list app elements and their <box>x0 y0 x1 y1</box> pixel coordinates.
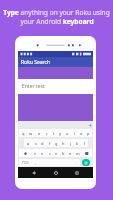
staticText: n <box>69 151 72 156</box>
button[interactable]: s <box>32 139 39 147</box>
button[interactable]: , <box>32 159 39 166</box>
button[interactable]: g <box>53 139 60 147</box>
button[interactable]: e <box>35 129 43 137</box>
button[interactable]: u <box>64 129 71 137</box>
button[interactable]: j <box>67 139 74 147</box>
staticText: j <box>70 141 72 146</box>
button[interactable]: a <box>24 139 32 147</box>
button[interactable]: Home <box>51 168 61 178</box>
button[interactable]: Recents <box>72 168 82 178</box>
button[interactable]: Back <box>29 168 39 178</box>
button[interactable]: w <box>27 129 35 137</box>
staticText: , <box>35 160 37 165</box>
staticText: k <box>76 141 79 146</box>
staticText: e <box>38 131 41 136</box>
button[interactable]: y <box>57 129 64 137</box>
staticText: Type anything on your Roku using <box>3 8 110 17</box>
button[interactable]: More options <box>87 122 93 128</box>
staticText: q <box>22 131 25 136</box>
button[interactable]: l <box>81 139 88 147</box>
staticText: l <box>84 141 86 146</box>
staticText: y <box>59 131 62 136</box>
staticText: Roku Search <box>21 59 51 66</box>
staticText: g <box>55 141 58 146</box>
staticText: d <box>41 141 44 146</box>
staticText: x <box>41 151 44 156</box>
button[interactable]: ?123 <box>19 159 32 166</box>
staticText: b <box>62 151 65 156</box>
button[interactable]: p <box>85 129 92 137</box>
staticText: a <box>27 141 30 146</box>
button[interactable]: z <box>31 149 39 157</box>
button[interactable]: Backspace <box>81 149 92 157</box>
button[interactable]: r <box>43 129 50 137</box>
staticText: Enter text <box>22 83 45 90</box>
button[interactable]: Search <box>82 159 90 166</box>
button[interactable]: o <box>78 129 85 137</box>
button[interactable]: n <box>67 149 74 157</box>
staticText: . <box>76 160 78 165</box>
button[interactable]: d <box>39 139 46 147</box>
button[interactable]: k <box>74 139 81 147</box>
staticText: ?123 <box>22 161 29 165</box>
staticText: p <box>87 131 90 136</box>
staticText: your Android keyboard <box>20 17 94 26</box>
button[interactable]: Roku Search <box>18 57 93 67</box>
staticText: w <box>29 131 33 136</box>
button[interactable]: Enter text <box>18 79 93 94</box>
staticText: s <box>35 141 37 146</box>
button[interactable]: i <box>71 129 78 137</box>
button[interactable]: x <box>39 149 46 157</box>
button[interactable]: b <box>60 149 67 157</box>
staticText: h <box>62 141 65 146</box>
staticText: t <box>53 131 55 136</box>
staticText: f <box>49 141 51 146</box>
button[interactable]: f <box>46 139 53 147</box>
staticText: v <box>55 151 58 156</box>
staticText: u <box>66 131 69 136</box>
button[interactable]: h <box>60 139 67 147</box>
button[interactable]: q <box>19 129 27 137</box>
staticText: z <box>34 151 36 156</box>
button[interactable]: t <box>50 129 57 137</box>
staticText: m <box>76 151 80 156</box>
staticText: i <box>74 131 76 136</box>
button[interactable]: c <box>46 149 53 157</box>
button[interactable]: v <box>53 149 60 157</box>
button[interactable]: m <box>74 149 81 157</box>
staticText: o <box>80 131 83 136</box>
button[interactable]: Shift <box>19 149 31 157</box>
button[interactable]: . <box>73 159 80 166</box>
staticText: c <box>49 151 51 156</box>
staticText: r <box>46 131 48 136</box>
